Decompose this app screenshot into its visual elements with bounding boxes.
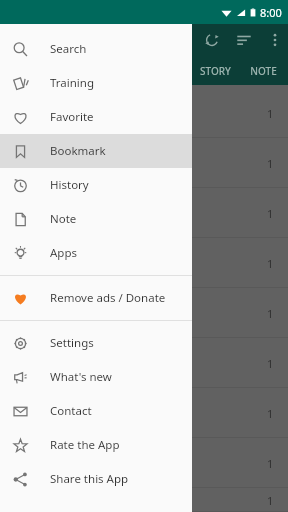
button[interactable]: 1 <box>0 288 288 338</box>
button[interactable]: Bookmark <box>0 134 192 168</box>
staticText: 1 <box>267 456 274 471</box>
staticText: History <box>50 177 89 193</box>
staticText: Share this App <box>50 471 129 487</box>
staticText: Contact <box>50 403 92 419</box>
staticText: What's new <box>50 369 112 385</box>
button[interactable]: Favorite <box>0 100 192 134</box>
button[interactable]: More options <box>262 26 288 54</box>
staticText: Training <box>50 75 95 91</box>
staticText: Search <box>50 41 87 57</box>
staticText: 1 <box>267 206 274 221</box>
button[interactable]: Share this App <box>0 462 192 496</box>
button[interactable]: NOTE <box>238 57 288 85</box>
staticText: Remove ads / Donate <box>50 290 166 306</box>
staticText: Bookmark <box>50 143 106 159</box>
staticText: 1 <box>267 256 274 271</box>
button[interactable]: STORY <box>192 57 238 85</box>
button[interactable]: 1 <box>0 438 288 488</box>
button[interactable]: 1 <box>0 238 288 288</box>
button[interactable]: 1 <box>0 88 288 138</box>
button[interactable]: Settings <box>0 326 192 360</box>
button[interactable]: 1 <box>0 388 288 438</box>
button[interactable]: Training <box>0 66 192 100</box>
button[interactable]: Apps <box>0 236 192 270</box>
button[interactable]: Rate the App <box>0 428 192 462</box>
staticText: Settings <box>50 335 94 351</box>
button[interactable]: Note <box>0 202 192 236</box>
button[interactable]: Search <box>0 32 192 66</box>
staticText: Favorite <box>50 109 94 125</box>
staticText: NOTE <box>250 64 277 78</box>
staticText: 1 <box>267 406 274 421</box>
button[interactable]: Contact <box>0 394 192 428</box>
staticText: 1 <box>267 106 274 121</box>
staticText: 1 <box>267 156 274 171</box>
staticText: STORY <box>200 64 231 78</box>
staticText: Rate the App <box>50 437 120 453</box>
staticText: 1 <box>267 356 274 371</box>
button[interactable]: 1 <box>0 188 288 238</box>
button[interactable]: Remove ads / Donate <box>0 281 192 315</box>
button[interactable]: 1 <box>0 138 288 188</box>
button[interactable]: Refresh <box>198 26 226 54</box>
button[interactable]: History <box>0 168 192 202</box>
staticText: Note <box>50 211 77 227</box>
button[interactable]: What's new <box>0 360 192 394</box>
staticText: 1 <box>267 493 274 508</box>
staticText: 1 <box>267 306 274 321</box>
staticText: Apps <box>50 245 78 261</box>
button[interactable]: 1 <box>0 488 288 512</box>
staticText: 8:00 <box>260 5 282 20</box>
button[interactable]: 1 <box>0 338 288 388</box>
button[interactable]: Sort <box>230 26 258 54</box>
